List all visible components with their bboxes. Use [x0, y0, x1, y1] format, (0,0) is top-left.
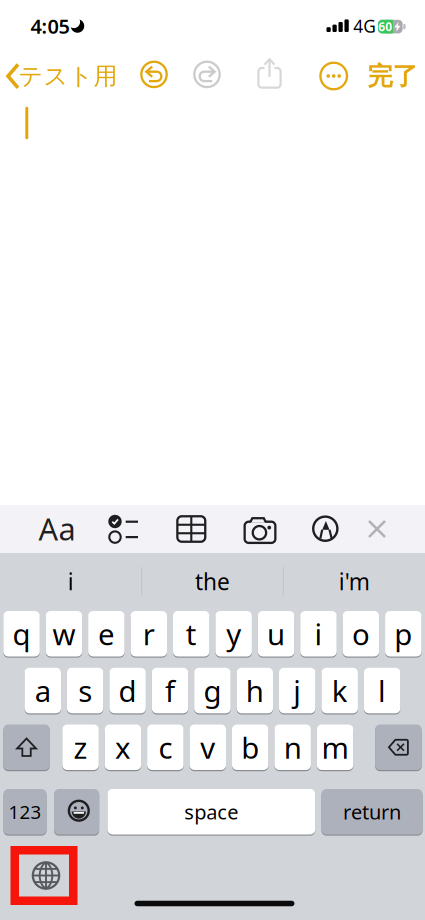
staticText: i — [314, 614, 322, 653]
staticText: a — [35, 671, 51, 710]
staticText: 123 — [8, 799, 41, 824]
button[interactable]: l — [364, 668, 400, 713]
button[interactable] — [319, 61, 348, 90]
button[interactable]: o — [343, 611, 379, 656]
staticText: v — [200, 728, 215, 767]
staticText: return — [343, 798, 401, 825]
staticText: x — [115, 728, 131, 767]
button[interactable]: r — [131, 611, 167, 656]
staticText: i'm — [339, 566, 370, 596]
staticText: y — [226, 614, 241, 653]
button[interactable]: q — [3, 611, 40, 656]
staticText: d — [119, 671, 137, 710]
button[interactable]: テスト用 — [4, 62, 116, 90]
staticText: m — [322, 728, 349, 767]
staticText: q — [13, 614, 31, 653]
button[interactable]: u — [258, 611, 294, 656]
staticText: s — [78, 671, 92, 710]
button[interactable] — [108, 514, 138, 544]
button[interactable]: a — [24, 668, 61, 713]
staticText: テスト用 — [18, 61, 117, 91]
staticText: o — [352, 614, 370, 653]
button[interactable]: f — [152, 668, 188, 713]
staticText: i — [68, 566, 74, 596]
button[interactable]: s — [67, 668, 103, 713]
staticText: the — [195, 566, 230, 596]
staticText: e — [98, 614, 115, 653]
button[interactable]: n — [274, 724, 311, 770]
staticText: space — [184, 798, 238, 825]
button[interactable]: return — [321, 789, 422, 834]
button[interactable]: Aa — [35, 508, 79, 548]
button[interactable]: i'm — [289, 559, 419, 603]
button[interactable]: t — [173, 611, 209, 656]
button[interactable]: i — [300, 611, 337, 656]
button[interactable] — [368, 520, 385, 537]
button[interactable]: space — [107, 789, 315, 834]
staticText: 4:05 — [30, 13, 69, 39]
button[interactable]: e — [88, 611, 125, 656]
staticText: Aa — [38, 508, 75, 549]
staticText: f — [165, 671, 175, 710]
staticText: u — [267, 614, 285, 653]
button[interactable]: x — [105, 724, 141, 770]
staticText: r — [143, 614, 155, 653]
staticText: b — [241, 728, 259, 767]
button[interactable]: v — [190, 724, 226, 770]
button[interactable] — [176, 515, 206, 543]
button[interactable]: 完了 — [366, 62, 418, 90]
staticText: n — [284, 728, 302, 767]
staticText: l — [378, 671, 386, 710]
button[interactable] — [193, 60, 221, 88]
button[interactable] — [3, 724, 50, 770]
button[interactable] — [312, 515, 339, 542]
staticText: 4G — [353, 14, 376, 37]
button[interactable]: c — [147, 724, 184, 770]
button[interactable] — [140, 60, 168, 88]
button[interactable]: the — [147, 559, 277, 603]
button[interactable]: y — [215, 611, 252, 656]
button[interactable]: g — [194, 668, 231, 713]
button[interactable] — [375, 724, 422, 770]
button[interactable]: i — [6, 559, 136, 603]
button[interactable]: m — [317, 724, 353, 770]
staticText: t — [186, 614, 197, 653]
staticText: c — [158, 728, 172, 767]
staticText: g — [203, 671, 221, 710]
button[interactable]: b — [232, 724, 268, 770]
button[interactable]: h — [237, 668, 273, 713]
button[interactable] — [54, 789, 99, 834]
button[interactable]: w — [46, 611, 82, 656]
staticText: 完了 — [367, 61, 417, 92]
staticText: w — [52, 614, 75, 653]
button[interactable] — [255, 56, 284, 91]
staticText: j — [293, 671, 301, 710]
button[interactable]: 123 — [3, 789, 46, 834]
button[interactable]: k — [321, 668, 358, 713]
button[interactable]: d — [109, 668, 146, 713]
staticText: h — [246, 671, 264, 710]
staticText: 60 — [378, 19, 392, 34]
button[interactable]: z — [62, 724, 99, 770]
staticText: p — [394, 614, 412, 653]
staticText: k — [332, 671, 348, 710]
staticText: z — [73, 728, 87, 767]
button[interactable] — [32, 861, 60, 889]
button[interactable] — [243, 517, 276, 543]
button[interactable]: p — [385, 611, 422, 656]
button[interactable]: j — [279, 668, 315, 713]
